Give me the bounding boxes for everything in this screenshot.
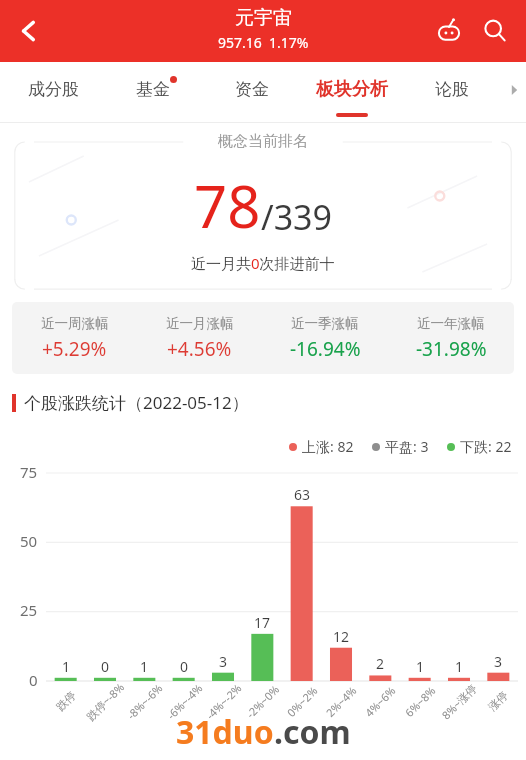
staticText: 0 xyxy=(180,657,189,676)
staticText: 近一月涨幅 xyxy=(166,315,234,332)
staticText: +5.29% xyxy=(42,336,107,362)
staticText: 17 xyxy=(254,613,271,632)
button[interactable]: 资金 xyxy=(202,62,302,123)
staticText: 0 xyxy=(101,657,110,676)
staticText: -31.98% xyxy=(416,336,487,362)
staticText: 1 xyxy=(416,657,425,676)
staticText: .com xyxy=(274,710,351,754)
staticText: -16.94% xyxy=(290,336,361,362)
staticText: 近一周涨幅 xyxy=(41,315,109,332)
staticText: 75 xyxy=(20,462,38,482)
staticText: 上涨: 82 xyxy=(302,437,354,456)
staticText: 0 xyxy=(29,670,38,690)
button[interactable]: 基金 xyxy=(103,62,202,123)
staticText: 近一年涨幅 xyxy=(417,315,485,332)
staticText: 成分股 xyxy=(28,79,79,100)
staticText: 跌停 xyxy=(53,688,79,714)
staticText: 论股 xyxy=(435,79,469,100)
staticText: -4%~-2% xyxy=(202,680,245,723)
button[interactable]: 近一季涨幅 xyxy=(262,302,388,374)
button[interactable]: 近一年涨幅 xyxy=(388,302,514,374)
staticText: 0%~2% xyxy=(283,683,321,720)
staticText: -6%~-4% xyxy=(163,680,206,723)
button[interactable]: More tabs xyxy=(502,78,526,102)
staticText: /339 xyxy=(261,194,332,240)
staticText: 957.16 1.17% xyxy=(218,33,309,52)
staticText: 板块分析 xyxy=(316,78,388,101)
staticText: 资金 xyxy=(235,79,269,100)
staticText: 近一季涨幅 xyxy=(291,315,359,332)
staticText: -8%~-6% xyxy=(123,680,166,723)
button[interactable]: 近一月涨幅 xyxy=(137,302,262,374)
button[interactable]: Search xyxy=(472,8,518,54)
staticText: 2%~4% xyxy=(322,683,360,720)
button[interactable]: 近一周涨幅 xyxy=(12,302,137,374)
staticText: 下跌: 22 xyxy=(460,437,512,456)
staticText: 12 xyxy=(333,627,350,646)
staticText: 近一月共0次排进前十 xyxy=(191,253,335,273)
staticText: 8%~涨停 xyxy=(438,681,480,722)
staticText: 25 xyxy=(20,600,38,620)
staticText: 1 xyxy=(62,657,71,676)
staticText: 涨停 xyxy=(485,688,511,714)
staticText: 63 xyxy=(294,485,311,504)
staticText: 概念当前排名 xyxy=(218,132,308,151)
staticText: 基金 xyxy=(136,79,170,100)
staticText: 元宇宙 xyxy=(235,6,292,30)
staticText: 2 xyxy=(376,654,385,673)
staticText: 3 xyxy=(494,652,503,671)
staticText: 78 xyxy=(194,166,261,245)
staticText: 1 xyxy=(455,657,464,676)
button[interactable]: 论股 xyxy=(402,62,502,123)
staticText: 6%~8% xyxy=(401,683,439,720)
staticText: 3 xyxy=(219,652,228,671)
staticText: 4%~6% xyxy=(361,683,399,720)
staticText: 1 xyxy=(140,657,149,676)
staticText: 31duo xyxy=(176,710,274,754)
button[interactable]: 板块分析 xyxy=(302,62,402,123)
staticText: 个股涨跌统计（2022-05-12） xyxy=(24,391,249,414)
button[interactable]: Back xyxy=(0,0,58,62)
staticText: 跌停~-8% xyxy=(83,679,127,724)
staticText: 平盘: 3 xyxy=(385,437,429,456)
staticText: -2%~0% xyxy=(243,682,282,721)
staticText: 50 xyxy=(20,531,38,551)
staticText: +4.56% xyxy=(167,336,232,362)
button[interactable]: AI assistant xyxy=(426,8,472,54)
button[interactable]: 成分股 xyxy=(4,62,103,123)
